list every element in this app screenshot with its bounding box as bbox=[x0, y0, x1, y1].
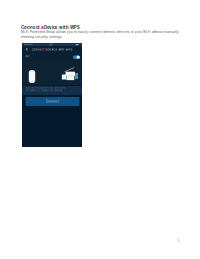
staticText: entering security settings. bbox=[21, 35, 63, 39]
staticText: Connect bbox=[46, 100, 59, 103]
staticText: two minutes to complete the connection. bbox=[24, 89, 63, 92]
staticText: 12:30 bbox=[48, 44, 52, 46]
staticText: Connect a Device with WPS bbox=[31, 48, 72, 51]
staticText: WPS bbox=[25, 55, 29, 58]
staticText: Connect a Device with WPS bbox=[21, 25, 80, 30]
staticText: Wi-Fi Protected Setup allows you to easi… bbox=[21, 30, 179, 34]
staticText: 5 bbox=[177, 238, 180, 243]
staticText: Wi-Fi bbox=[28, 44, 32, 46]
staticText: Press the WPS button on your device with… bbox=[24, 87, 65, 89]
button[interactable]: WPS toggle bbox=[73, 55, 80, 59]
button[interactable]: Connect bbox=[25, 97, 79, 106]
button[interactable]: Back bbox=[24, 46, 30, 52]
